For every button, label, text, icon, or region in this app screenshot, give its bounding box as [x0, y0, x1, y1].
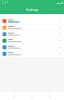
button[interactable]	[0, 18, 64, 24]
button[interactable]	[0, 31, 64, 38]
button[interactable]	[0, 44, 64, 51]
button[interactable]: Navigation	[46, 92, 55, 100]
staticText: 9:41	[1, 1, 8, 4]
button[interactable]	[0, 51, 64, 57]
button[interactable]: Navigation	[9, 92, 18, 100]
button[interactable]	[0, 25, 64, 31]
button[interactable]	[0, 38, 64, 44]
button[interactable]: Navigation	[27, 92, 36, 100]
staticText: ▂▃ ▮	[56, 1, 62, 4]
staticText: Settings	[25, 7, 38, 12]
